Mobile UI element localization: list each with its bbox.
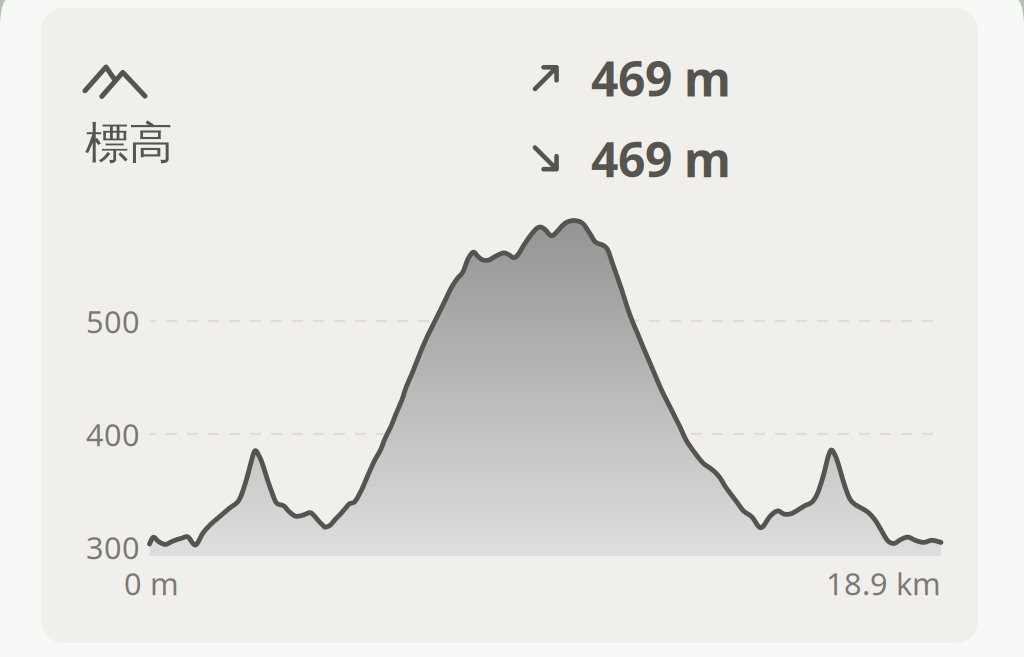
staticText: 18.9 km	[826, 563, 941, 604]
staticText: 469 m	[591, 127, 731, 190]
staticText: 400	[86, 414, 140, 455]
staticText: 300	[86, 527, 140, 568]
staticText: 標高	[85, 116, 173, 170]
staticText: 0 m	[124, 563, 179, 604]
staticText: 469 m	[591, 46, 731, 110]
staticText: 500	[86, 301, 140, 342]
